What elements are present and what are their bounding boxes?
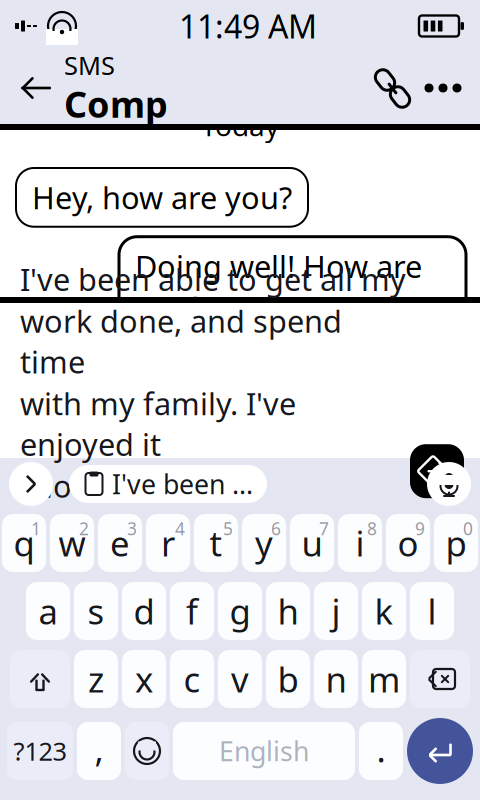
button[interactable]: q: [2, 514, 46, 572]
staticText: 1: [31, 517, 41, 540]
button[interactable]: I've been ...: [69, 465, 267, 503]
staticText: e: [110, 520, 130, 566]
button[interactable]: Call: [366, 59, 418, 117]
button[interactable]: Send: [410, 444, 464, 498]
button[interactable]: ?123: [7, 722, 73, 780]
staticText: work done, and spend time: [20, 301, 342, 382]
staticText: a: [38, 588, 57, 634]
button[interactable]: x: [122, 650, 166, 708]
staticText: h: [277, 588, 298, 634]
staticText: g: [229, 588, 250, 634]
button[interactable]: English: [173, 722, 355, 780]
button[interactable]: b: [266, 650, 310, 708]
button[interactable]: Expand toolbar: [9, 462, 53, 506]
staticText: Hey, how are you?: [32, 177, 292, 218]
button[interactable]: e: [98, 514, 142, 572]
staticText: i: [355, 520, 364, 566]
staticText: • Today •: [176, 107, 304, 144]
button[interactable]: Voice input: [427, 462, 471, 506]
button[interactable]: Emoji: [125, 722, 169, 780]
button[interactable]: y: [242, 514, 286, 572]
button[interactable]: h: [266, 582, 310, 640]
staticText: SMS: [64, 48, 115, 82]
button[interactable]: r: [146, 514, 190, 572]
button[interactable]: u: [290, 514, 334, 572]
staticText: z: [88, 656, 104, 702]
staticText: p: [445, 520, 466, 566]
button[interactable]: p: [434, 514, 478, 572]
button[interactable]: f: [170, 582, 214, 640]
staticText: 9: [415, 517, 425, 540]
staticText: 11:49 AM: [179, 5, 317, 47]
button[interactable]: z: [74, 650, 118, 708]
staticText: m: [368, 656, 400, 702]
button[interactable]: c: [170, 650, 214, 708]
staticText: k: [374, 588, 393, 634]
staticText: ?123: [13, 734, 66, 768]
staticText: a lot. :): [20, 465, 116, 506]
staticText: c: [183, 656, 200, 702]
button[interactable]: v: [218, 650, 262, 708]
staticText: .: [376, 726, 385, 772]
button[interactable]: i: [338, 514, 382, 572]
staticText: 0: [463, 517, 473, 540]
button[interactable]: ,: [77, 722, 121, 780]
staticText: I've been ...: [112, 466, 253, 502]
staticText: 2: [79, 517, 89, 540]
button[interactable]: Enter: [407, 718, 473, 784]
staticText: Comp: [64, 80, 168, 128]
staticText: q: [13, 520, 34, 566]
button[interactable]: Backspace: [410, 650, 470, 708]
staticText: 7: [319, 517, 329, 540]
staticText: o: [397, 520, 418, 566]
staticText: t: [209, 520, 222, 566]
button[interactable]: l: [410, 582, 454, 640]
staticText: b: [277, 656, 298, 702]
staticText: I've been able to get all my: [20, 259, 406, 299]
staticText: n: [325, 656, 346, 702]
button[interactable]: j: [314, 582, 358, 640]
staticText: l: [427, 588, 436, 634]
staticText: 5: [223, 517, 233, 540]
staticText: f: [186, 588, 198, 634]
button[interactable]: n: [314, 650, 358, 708]
staticText: English: [219, 733, 309, 769]
button[interactable]: m: [362, 650, 406, 708]
staticText: s: [87, 588, 104, 634]
button[interactable]: a: [26, 582, 70, 640]
staticText: r: [161, 520, 175, 566]
staticText: w: [58, 520, 85, 566]
staticText: ,: [94, 726, 103, 772]
staticText: 6: [271, 517, 281, 540]
button[interactable]: s: [74, 582, 118, 640]
staticText: 4: [175, 517, 185, 540]
staticText: 3: [127, 517, 137, 540]
staticText: u: [301, 520, 322, 566]
button[interactable]: w: [50, 514, 94, 572]
staticText: 8: [367, 517, 377, 540]
button[interactable]: o: [386, 514, 430, 572]
staticText: y: [255, 520, 273, 566]
button[interactable]: Back: [10, 57, 62, 119]
button[interactable]: Shift: [10, 650, 70, 708]
button[interactable]: t: [194, 514, 238, 572]
staticText: j: [331, 588, 340, 634]
button[interactable]: More options: [418, 59, 468, 117]
button[interactable]: .: [359, 722, 403, 780]
staticText: Doing well! How are you?: [135, 246, 422, 327]
button[interactable]: d: [122, 582, 166, 640]
button[interactable]: k: [362, 582, 406, 640]
staticText: d: [133, 588, 154, 634]
staticText: v: [231, 656, 249, 702]
staticText: x: [135, 656, 153, 702]
button[interactable]: g: [218, 582, 262, 640]
staticText: with my family. I've enjoyed it: [20, 383, 296, 464]
